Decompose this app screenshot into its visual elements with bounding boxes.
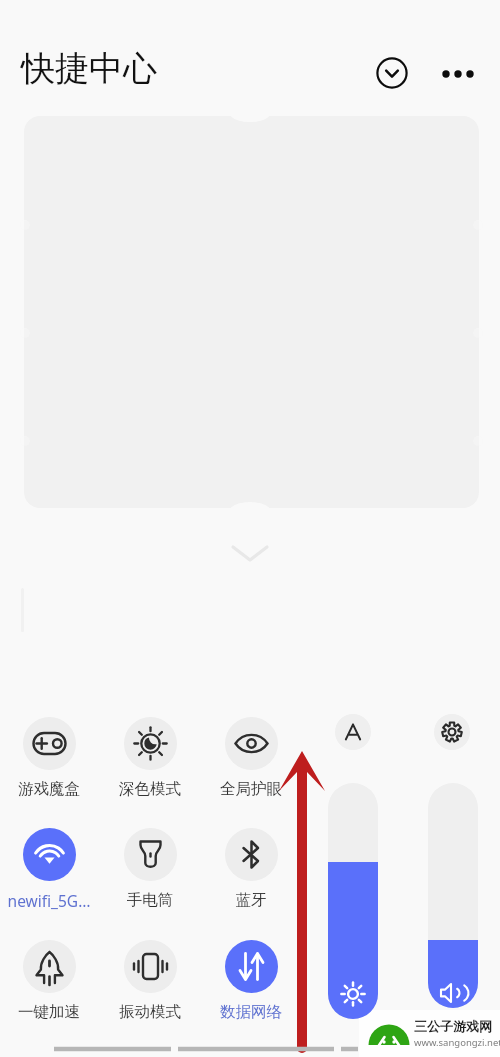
staticText: 全局护眼 [201, 779, 301, 799]
staticText: www.sangongzi.net [414, 1036, 500, 1049]
button[interactable]: 游戏魔盒 [0, 717, 99, 799]
button[interactable]: 蓝牙 [201, 828, 301, 910]
staticText: 游戏魔盒 [0, 779, 99, 799]
staticText: 手电筒 [100, 890, 200, 910]
button[interactable]: newifi_5G… [0, 828, 99, 911]
staticText: 数据网络 [201, 1002, 301, 1022]
button[interactable]: 一键加速 [0, 940, 99, 1022]
staticText: 一键加速 [0, 1002, 99, 1022]
staticText: 快捷中心 [21, 47, 157, 90]
staticText: 深色模式 [100, 779, 200, 799]
button[interactable]: 全局护眼 [201, 717, 301, 799]
button[interactable]: 手电筒 [100, 828, 200, 910]
staticText: 振动模式 [100, 1002, 200, 1022]
button[interactable]: Collapse panel [372, 53, 412, 93]
button[interactable]: Volume level [428, 783, 478, 1008]
button[interactable]: Settings [434, 714, 470, 750]
button[interactable]: Brightness level [328, 783, 378, 1019]
button[interactable]: 振动模式 [100, 940, 200, 1022]
button[interactable]: 数据网络 [201, 940, 301, 1022]
button[interactable]: 深色模式 [100, 717, 200, 799]
staticText: 三公子游戏网 [414, 1018, 492, 1034]
staticText: newifi_5G… [0, 890, 99, 911]
staticText: 蓝牙 [201, 890, 301, 910]
button[interactable]: More options [438, 54, 478, 94]
button[interactable]: Auto brightness [335, 714, 371, 750]
